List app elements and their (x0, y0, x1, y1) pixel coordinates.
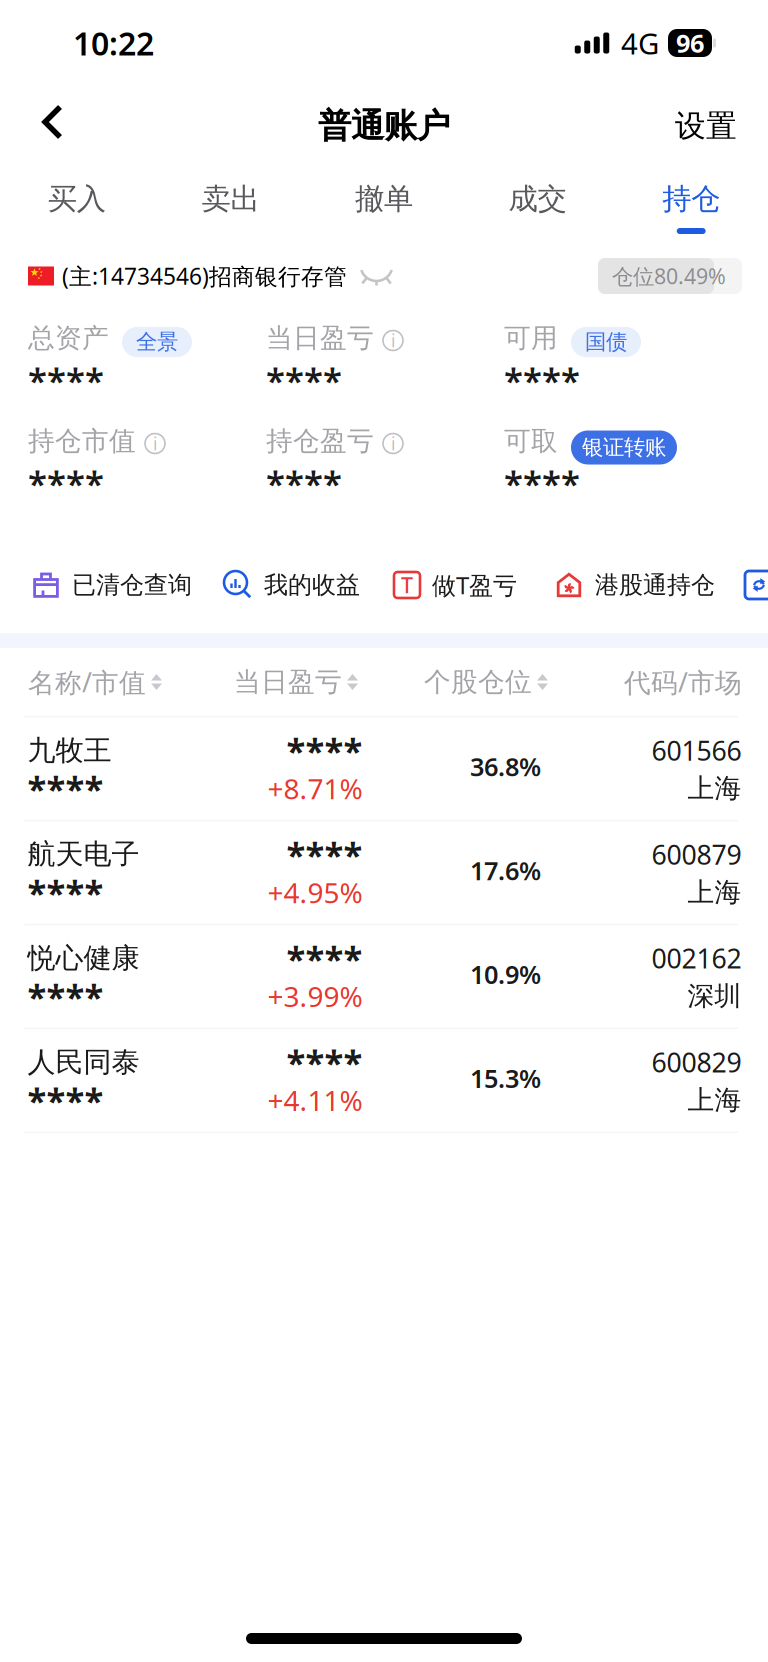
staticText: 17.6% (470, 853, 541, 887)
button[interactable]: 人民同泰 (0, 1028, 768, 1132)
staticText: 航天电子 (27, 837, 139, 871)
staticText: 10.9% (470, 957, 541, 991)
staticText: 持仓 (662, 181, 720, 217)
staticText: **** (27, 973, 103, 1019)
button[interactable]: 撤单 (307, 166, 461, 244)
button[interactable]: 隐藏金额 (347, 258, 392, 294)
button[interactable]: 买入 (0, 166, 154, 244)
button[interactable]: 已清仓查询 (32, 570, 192, 600)
staticText: **** (504, 357, 580, 403)
staticText: +4.11% (267, 1081, 362, 1119)
staticText: 九牧王 (27, 733, 111, 768)
staticText: 总资产 (28, 322, 109, 354)
staticText: i (391, 329, 395, 352)
staticText: **** (286, 727, 362, 773)
staticText: +4.95% (267, 874, 362, 911)
staticText: **** (27, 1077, 103, 1123)
staticText: 个股仓位 (424, 666, 532, 698)
staticText: 600829 (651, 1044, 741, 1080)
staticText: 名称/市值 (28, 664, 146, 700)
staticText: 4G (621, 23, 659, 62)
staticText: 普通账户 (318, 105, 450, 146)
staticText: 当日盈亏 (266, 322, 374, 354)
staticText: 当日盈亏 (234, 666, 342, 698)
staticText: 可取 (504, 425, 558, 457)
staticText: (主:14734546)招商银行存管 (62, 261, 347, 291)
staticText: 代码/市场 (624, 664, 742, 700)
staticText: **** (27, 869, 103, 915)
staticText: **** (266, 460, 342, 506)
staticText: **** (286, 831, 362, 877)
button[interactable]: 返回 (21, 96, 84, 156)
button[interactable]: 持仓 (614, 166, 768, 244)
button[interactable]: 悦心健康 (0, 924, 768, 1028)
staticText: 已清仓查询 (72, 570, 192, 600)
staticText: 银证转账 (582, 434, 666, 461)
button[interactable]: 成交 (461, 166, 614, 244)
staticText: **** (504, 460, 580, 506)
button[interactable]: 更多 (745, 571, 768, 599)
staticText: **** (28, 357, 104, 403)
staticText: +3.99% (267, 978, 362, 1015)
staticText: 36.8% (470, 750, 541, 783)
staticText: i (153, 432, 157, 455)
staticText: **** (28, 460, 104, 506)
staticText: 持仓市值 (28, 425, 136, 457)
staticText: 设置 (675, 107, 737, 145)
staticText: **** (286, 935, 362, 981)
button[interactable]: 设置 (663, 95, 749, 157)
staticText: 002162 (651, 940, 741, 976)
staticText: 15.3% (470, 1061, 541, 1095)
button[interactable]: T (394, 569, 517, 601)
staticText: 10:22 (73, 22, 154, 64)
staticText: 仓位80.49% (612, 262, 726, 290)
staticText: 买入 (48, 181, 106, 217)
button[interactable]: 我的收益 (224, 570, 360, 600)
button[interactable]: 卖出 (154, 166, 307, 244)
button[interactable]: 港股通持仓 (555, 570, 715, 600)
staticText: 上海 (687, 772, 741, 805)
staticText: 我的收益 (264, 570, 360, 600)
staticText: **** (266, 357, 342, 403)
staticText: 成交 (509, 181, 567, 217)
staticText: 可用 (504, 322, 558, 354)
staticText: 卖出 (201, 181, 259, 217)
staticText: 上海 (687, 876, 741, 909)
staticText: 国债 (585, 329, 627, 355)
staticText: 做T盈亏 (432, 569, 517, 601)
staticText: 601566 (651, 733, 741, 768)
button[interactable]: 航天电子 (0, 820, 768, 924)
staticText: i (391, 432, 395, 455)
staticText: T (401, 571, 413, 599)
staticText: +8.71% (267, 770, 362, 807)
staticText: 持仓盈亏 (266, 425, 374, 457)
staticText: 深圳 (687, 980, 741, 1013)
staticText: 上海 (687, 1084, 741, 1116)
button[interactable]: 九牧王 (0, 716, 768, 820)
staticText: 悦心健康 (27, 941, 139, 975)
staticText: **** (286, 1039, 362, 1085)
staticText: 96 (676, 26, 704, 60)
staticText: 全景 (136, 329, 178, 355)
staticText: 600879 (651, 837, 741, 872)
staticText: 撤单 (355, 181, 413, 217)
staticText: **** (27, 765, 103, 811)
staticText: 港股通持仓 (595, 570, 715, 600)
staticText: 人民同泰 (27, 1045, 139, 1079)
